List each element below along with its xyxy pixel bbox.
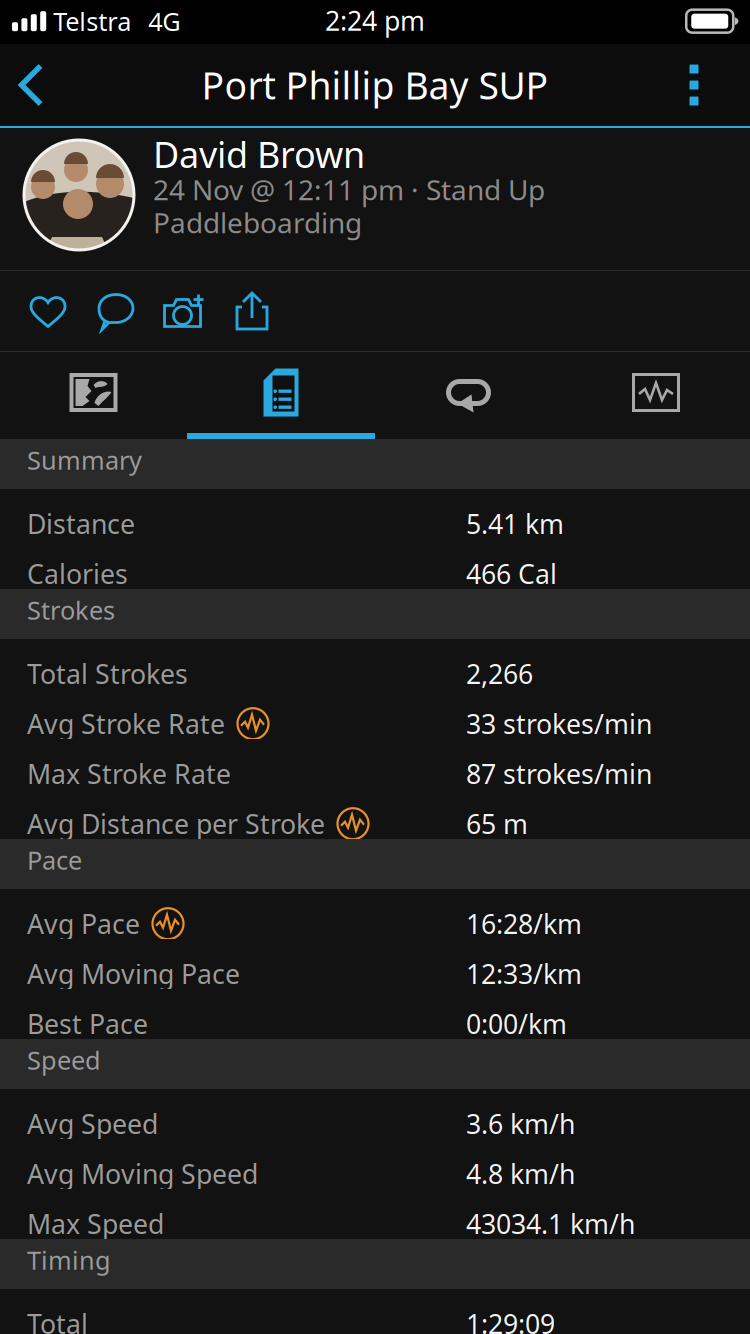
staticText: Pace (27, 843, 82, 877)
staticText: Timing (27, 1243, 111, 1277)
staticText: Total (27, 1306, 88, 1334)
staticText: 3.6 km/h (466, 1106, 575, 1141)
staticText: 43034.1 km/h (466, 1206, 635, 1241)
staticText: Calories (27, 556, 128, 591)
button[interactable]: Comment (82, 273, 150, 349)
staticText: Speed (27, 1043, 101, 1077)
staticText: 1:29:09 (466, 1306, 555, 1334)
staticText: Avg Moving Pace (27, 956, 240, 991)
staticText: 466 Cal (466, 556, 557, 591)
staticText: 24 Nov @ 12:11 pm · Stand Up (153, 171, 545, 208)
staticText: 16:28/km (466, 906, 582, 941)
staticText: 2,266 (466, 656, 533, 691)
staticText: Max Speed (27, 1206, 164, 1241)
staticText: Avg Pace (27, 906, 140, 941)
staticText: Avg Distance per Stroke (27, 806, 325, 841)
staticText: 4.8 km/h (466, 1156, 575, 1191)
staticText: Avg Speed (27, 1106, 158, 1141)
staticText: Strokes (27, 593, 115, 627)
staticText: Paddleboarding (153, 204, 362, 241)
staticText: Avg Moving Speed (27, 1156, 258, 1191)
staticText: Telstra (53, 4, 131, 38)
button[interactable]: Share (218, 273, 286, 349)
button[interactable]: Details (187, 352, 375, 433)
staticText: 4G (148, 4, 180, 38)
button[interactable]: Map (0, 352, 187, 433)
staticText: 33 strokes/min (466, 706, 652, 741)
staticText: Total Strokes (27, 656, 188, 691)
button[interactable]: More options (638, 44, 750, 126)
staticText: Distance (27, 506, 135, 541)
staticText: 87 strokes/min (466, 756, 652, 791)
button[interactable]: Back (0, 44, 62, 126)
button[interactable]: Add photo (150, 273, 218, 349)
staticText: Port Phillip Bay SUP (201, 60, 548, 110)
staticText: 65 m (466, 806, 528, 841)
staticText: Max Stroke Rate (27, 756, 231, 791)
button[interactable]: Charts (562, 352, 750, 433)
staticText: Summary (27, 443, 142, 477)
staticText: 5.41 km (466, 506, 564, 541)
button[interactable]: Like (14, 273, 82, 349)
button[interactable]: Laps (375, 352, 562, 433)
staticText: 0:00/km (466, 1006, 567, 1041)
staticText: Avg Stroke Rate (27, 706, 225, 741)
staticText: Best Pace (27, 1006, 148, 1041)
staticText: David Brown (153, 130, 365, 178)
staticText: 12:33/km (466, 956, 582, 991)
staticText: 2:24 pm (325, 3, 425, 38)
